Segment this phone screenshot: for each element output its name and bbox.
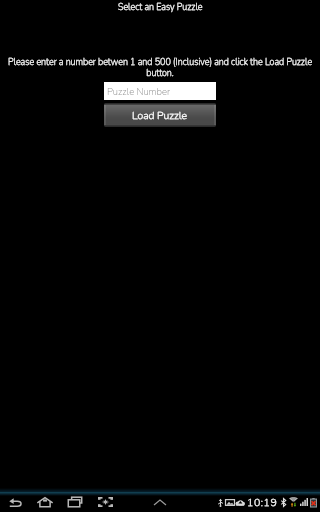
button[interactable]: Load Puzzle (104, 103, 216, 127)
button[interactable]: Home (37, 497, 53, 507)
staticText: 10:19 (247, 495, 278, 509)
staticText: Select an Easy Puzzle (118, 1, 203, 13)
button[interactable]: Puzzle Number (104, 82, 216, 100)
staticText: Please enter a number betwen 1 and 500 (… (7, 56, 313, 79)
button[interactable]: Recent apps (68, 497, 82, 507)
staticText: Puzzle Number (107, 85, 171, 98)
staticText: Load Puzzle (132, 108, 188, 122)
button[interactable]: Show menu (154, 500, 166, 505)
button[interactable]: Screenshot (98, 497, 113, 507)
button[interactable]: Back (9, 497, 22, 507)
